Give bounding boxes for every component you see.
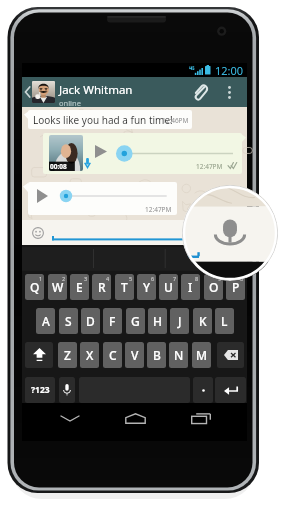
staticText: 5: [129, 275, 133, 282]
staticText: Jack Whitman: [59, 82, 133, 98]
staticText: M: [196, 347, 208, 363]
staticText: N: [174, 347, 184, 363]
staticText: U: [164, 279, 173, 295]
button[interactable]: N: [169, 342, 188, 368]
staticText: 3: [84, 275, 88, 282]
button[interactable]: Hide keyboard: [53, 407, 87, 429]
button[interactable]: A: [36, 308, 55, 334]
button[interactable]: [193, 377, 213, 403]
button[interactable]: Looks like you had a fun time!: [28, 110, 192, 129]
staticText: H: [153, 313, 162, 329]
staticText: 6: [151, 275, 155, 282]
staticText: R: [98, 279, 106, 295]
button[interactable]: Y: [137, 274, 156, 300]
staticText: 7: [173, 275, 177, 282]
staticText: Q: [30, 279, 40, 295]
button[interactable]: H: [148, 308, 167, 334]
staticText: 9: [218, 275, 222, 282]
button[interactable]: Video message: [49, 135, 83, 171]
button[interactable]: Enter: [215, 377, 246, 403]
button[interactable]: V: [125, 342, 144, 368]
button[interactable]: Contact photo: [32, 81, 55, 103]
button[interactable]: W: [48, 274, 67, 300]
button[interactable]: Z: [58, 342, 77, 368]
button[interactable]: C: [103, 342, 122, 368]
button[interactable]: P: [226, 274, 245, 300]
staticText: V: [131, 347, 139, 363]
button[interactable]: M: [192, 342, 211, 368]
staticText: D: [86, 313, 95, 329]
button[interactable]: Voice input: [59, 377, 75, 403]
button[interactable]: Home: [118, 407, 152, 429]
staticText: Looks like you had a fun time!: [33, 113, 173, 127]
staticText: K: [199, 313, 207, 329]
staticText: 12:47PM: [145, 205, 172, 214]
button[interactable]: S: [59, 308, 78, 334]
button[interactable]: D: [81, 308, 100, 334]
button[interactable]: J: [170, 308, 189, 334]
staticText: I: [188, 279, 193, 295]
button[interactable]: G: [126, 308, 145, 334]
staticText: W: [52, 279, 64, 295]
button[interactable]: X: [80, 342, 99, 368]
staticText: E: [76, 279, 83, 295]
button[interactable]: L: [215, 308, 234, 334]
button[interactable]: Attach: [189, 77, 211, 107]
staticText: T: [121, 279, 128, 295]
staticText: 8: [195, 275, 199, 282]
staticText: 2: [62, 275, 66, 282]
button[interactable]: Shift: [25, 342, 53, 368]
staticText: X: [86, 347, 94, 363]
staticText: C: [109, 347, 117, 363]
staticText: B: [153, 347, 161, 363]
staticText: online: [59, 98, 81, 108]
button[interactable]: U: [159, 274, 178, 300]
staticText: 12:47PM: [196, 162, 223, 171]
staticText: 1: [39, 275, 43, 282]
staticText: 0: [240, 275, 244, 282]
staticText: 4: [106, 275, 110, 282]
staticText: J: [178, 313, 182, 329]
button[interactable]: Back: [22, 77, 32, 107]
staticText: G: [131, 313, 140, 329]
staticText: O: [209, 279, 219, 295]
staticText: 00:08: [50, 162, 67, 171]
button[interactable]: Recent apps: [184, 407, 218, 429]
staticText: A: [42, 313, 50, 329]
button[interactable]: E: [70, 274, 89, 300]
button[interactable]: B: [147, 342, 166, 368]
button[interactable]: Emoji: [32, 227, 44, 239]
staticText: Z: [64, 347, 71, 363]
button[interactable]: More options: [221, 77, 238, 107]
staticText: Y: [143, 279, 151, 295]
staticText: 12:00: [215, 63, 244, 77]
staticText: 12:46PM: [162, 116, 189, 125]
staticText: ?123: [31, 384, 50, 396]
button[interactable]: Backspace: [217, 342, 244, 368]
button[interactable]: R: [92, 274, 111, 300]
button[interactable]: K: [193, 308, 212, 334]
button[interactable]: Q: [25, 274, 44, 300]
staticText: L: [221, 313, 228, 329]
button[interactable]: 12:47PM: [28, 182, 177, 215]
button[interactable]: Video message: [43, 133, 242, 174]
staticText: S: [65, 313, 72, 329]
button[interactable]: I: [181, 274, 200, 300]
button[interactable]: Back: [22, 77, 247, 107]
button[interactable]: Voice message button: [182, 185, 278, 281]
staticText: P: [232, 279, 240, 295]
button[interactable]: F: [103, 308, 122, 334]
staticText: F: [109, 313, 116, 329]
button[interactable]: O: [204, 274, 223, 300]
button[interactable]: ?123: [25, 377, 55, 403]
button[interactable]: T: [115, 274, 134, 300]
